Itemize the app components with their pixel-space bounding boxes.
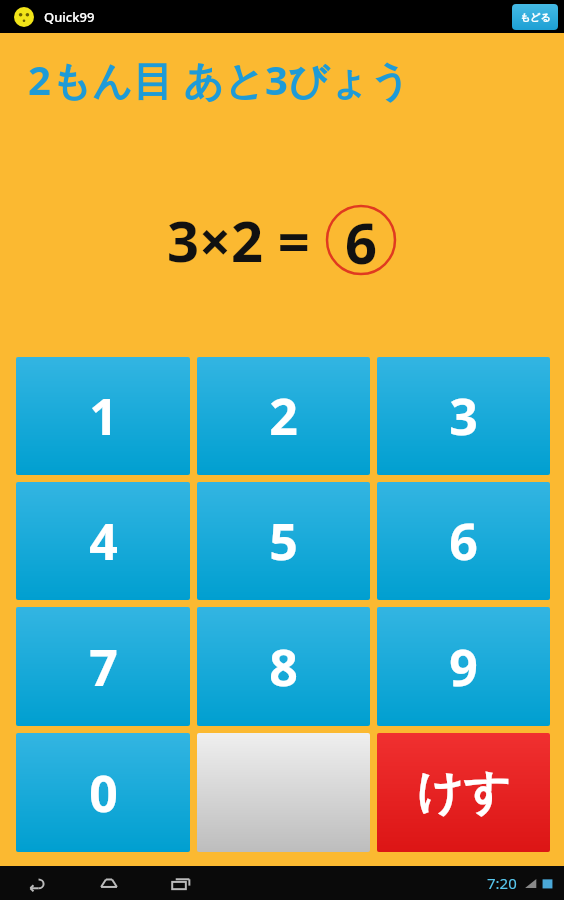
staticText: 6 — [449, 507, 478, 575]
staticText: 1 — [89, 382, 118, 450]
button[interactable]: 8 — [197, 607, 370, 726]
button[interactable]: 2 — [197, 357, 370, 475]
button[interactable]: 4 — [16, 482, 190, 600]
staticText: 0 — [89, 759, 118, 827]
button[interactable]: 1 — [16, 357, 190, 475]
staticText: 7 — [89, 633, 118, 701]
button[interactable]: もどる — [512, 4, 558, 30]
staticText: 5 — [269, 507, 298, 575]
staticText: 9 — [449, 633, 478, 701]
staticText: 2もん目 あと3びょう — [28, 52, 411, 107]
button[interactable]: 0 — [16, 733, 190, 852]
staticText: 3×2 = — [167, 202, 325, 278]
staticText: 2 — [269, 382, 298, 450]
staticText: もどる — [520, 11, 551, 24]
button[interactable]: 7 — [16, 607, 190, 726]
button[interactable]: 3 — [377, 357, 550, 475]
button[interactable]: 5 — [197, 482, 370, 600]
staticText: 3 — [449, 382, 478, 450]
staticText: 4 — [89, 507, 118, 575]
staticText: Quick99 — [44, 8, 95, 26]
button[interactable]: 9 — [377, 607, 550, 726]
button[interactable]: Empty key — [197, 733, 370, 852]
button[interactable]: けす — [377, 733, 550, 852]
staticText: 7:20 — [487, 873, 517, 893]
button[interactable]: Back — [20, 866, 54, 900]
staticText: けす — [416, 764, 511, 822]
button[interactable]: 6 — [377, 482, 550, 600]
button[interactable]: Recent apps — [164, 866, 198, 900]
staticText: 8 — [269, 633, 298, 701]
button[interactable]: Home — [92, 866, 126, 900]
staticText: 6 — [345, 204, 378, 276]
